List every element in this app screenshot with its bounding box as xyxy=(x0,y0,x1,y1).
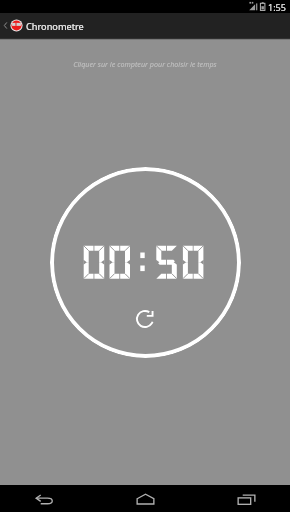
staticText: Cliquer sur le compteur pour choisir le … xyxy=(73,59,217,69)
button[interactable]: Reset xyxy=(133,307,157,331)
button[interactable]: Navigate up xyxy=(0,13,10,38)
button[interactable]: Home xyxy=(88,485,202,512)
staticText: Chronometre xyxy=(26,20,84,33)
button[interactable]: Choisir le temps xyxy=(50,167,241,358)
staticText: 1:55 xyxy=(268,1,286,13)
button[interactable]: Back xyxy=(0,485,88,512)
button[interactable]: Recents xyxy=(202,485,290,512)
